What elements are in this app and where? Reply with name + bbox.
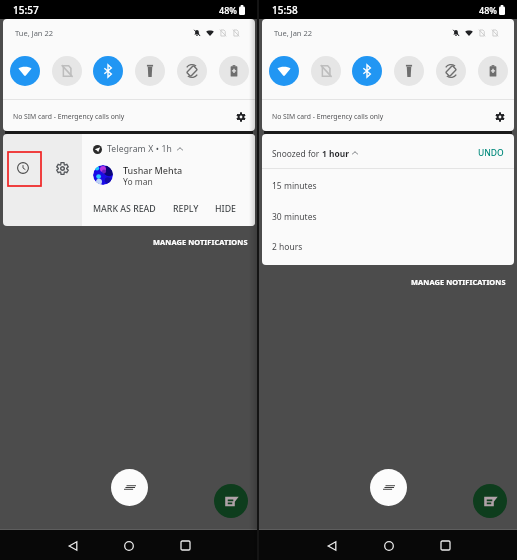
button[interactable]: Settings [488, 105, 511, 128]
button[interactable]: Clear all notifications [370, 469, 407, 506]
staticText: 30 minutes [272, 211, 317, 223]
button[interactable]: Snoozed for [272, 137, 504, 169]
button[interactable]: MARK AS READ [91, 201, 158, 217]
button[interactable]: Quick setting [219, 56, 249, 86]
staticText: Telegram X • 1h [107, 143, 173, 155]
staticText: Tue, Jan 22 [274, 28, 313, 38]
button[interactable]: MANAGE NOTIFICATIONS [151, 235, 250, 249]
button[interactable]: Quick setting [352, 56, 382, 86]
button[interactable]: Quick setting [478, 56, 508, 86]
staticText: HIDE [215, 203, 237, 215]
button[interactable]: REPLY [171, 201, 201, 217]
staticText: Yo man [123, 176, 153, 188]
button[interactable]: Quick setting [52, 56, 82, 86]
button[interactable]: New message [214, 484, 248, 518]
staticText: REPLY [173, 203, 199, 215]
button[interactable]: 15 minutes [262, 173, 514, 199]
button[interactable]: Back [61, 534, 84, 557]
staticText: 15:58 [272, 3, 298, 17]
button[interactable]: Quick setting [177, 56, 207, 86]
button[interactable]: HIDE [213, 201, 239, 217]
staticText: MARK AS READ [93, 203, 156, 215]
staticText: 1 hour [322, 148, 349, 159]
button[interactable]: 2 hours [262, 234, 514, 260]
button[interactable]: Clear all notifications [111, 469, 148, 506]
button[interactable]: Quick setting [311, 56, 341, 86]
staticText: No SIM card - Emergency calls only [13, 112, 125, 121]
button[interactable]: Quick setting [93, 56, 123, 86]
button[interactable]: New message [473, 484, 507, 518]
button[interactable]: Back [320, 534, 343, 557]
button[interactable]: Home [377, 534, 400, 557]
staticText: 48% [479, 4, 497, 16]
button[interactable]: Recents [174, 534, 197, 557]
staticText: MANAGE NOTIFICATIONS [153, 237, 248, 247]
button[interactable]: 30 minutes [262, 204, 514, 230]
button[interactable]: Recents [434, 534, 457, 557]
button[interactable]: Quick setting [394, 56, 424, 86]
button[interactable]: Quick setting [436, 56, 466, 86]
staticText: 15:57 [13, 3, 39, 17]
staticText: Tushar Mehta [123, 164, 183, 176]
staticText: No SIM card - Emergency calls only [272, 112, 384, 121]
button[interactable]: MANAGE NOTIFICATIONS [409, 275, 508, 289]
button[interactable]: Quick setting [10, 56, 40, 86]
button[interactable]: Quick setting [269, 56, 299, 86]
button[interactable]: Notification settings [50, 156, 74, 180]
staticText: MANAGE NOTIFICATIONS [411, 277, 506, 287]
staticText: Tue, Jan 22 [15, 28, 54, 38]
button[interactable]: Snooze [11, 156, 35, 180]
staticText: Snoozed for [272, 148, 322, 159]
button[interactable]: Quick setting [135, 56, 165, 86]
button[interactable]: Settings [229, 105, 252, 128]
button[interactable]: Home [117, 534, 140, 557]
staticText: UNDO [478, 147, 504, 159]
staticText: 2 hours [272, 241, 303, 253]
staticText: 48% [219, 4, 237, 16]
staticText: 15 minutes [272, 180, 317, 192]
